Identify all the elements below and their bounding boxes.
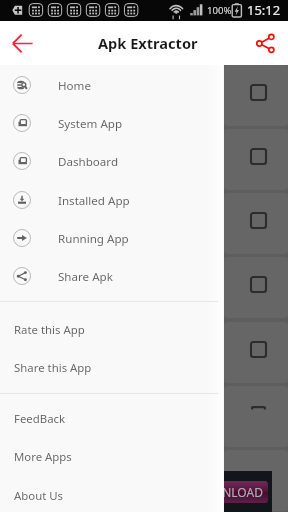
staticText: Running App (58, 231, 129, 247)
staticText: Dashboard (58, 154, 119, 170)
button[interactable]: System App (0, 104, 224, 142)
button[interactable] (224, 193, 288, 254)
button[interactable]: FeedBack (0, 400, 224, 438)
button[interactable] (224, 257, 288, 318)
button[interactable]: Running App (0, 219, 224, 257)
button[interactable]: Share (247, 26, 281, 60)
button[interactable]: About Us (0, 477, 224, 512)
button[interactable]: Share this App (0, 349, 224, 387)
button[interactable]: Installed App (0, 181, 224, 219)
staticText: 100% (207, 4, 232, 17)
button[interactable]: Share Apk (0, 257, 224, 295)
button[interactable] (224, 65, 288, 126)
button[interactable]: Home (0, 66, 224, 104)
button[interactable]: Back (5, 26, 39, 60)
button[interactable]: More Apps (0, 438, 224, 476)
staticText: 15:12 (247, 1, 281, 19)
button[interactable] (224, 322, 288, 383)
staticText: Apk Extractor (98, 33, 198, 53)
staticText: Share this App (14, 360, 92, 376)
staticText: Share Apk (58, 269, 113, 285)
staticText: Rate this App (14, 322, 85, 338)
staticText: More Apps (14, 449, 72, 465)
staticText: System App (58, 116, 123, 132)
staticText: DOWNLOAD (193, 484, 263, 500)
button[interactable] (224, 129, 288, 190)
button[interactable]: Rate this App (0, 311, 224, 349)
button[interactable] (224, 386, 288, 447)
staticText: FeedBack (14, 411, 66, 427)
button[interactable]: Dashboard (0, 142, 224, 180)
staticText: About Us (14, 488, 64, 504)
button[interactable] (224, 450, 288, 511)
button[interactable]: DOWNLOAD (187, 481, 268, 503)
staticText: Installed App (58, 193, 130, 209)
staticText: Home (58, 78, 91, 94)
